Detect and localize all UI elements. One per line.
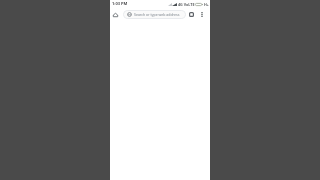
staticText: Search or type web address [134, 12, 180, 17]
button[interactable]: Tabs [187, 10, 196, 19]
button[interactable]: Home [111, 10, 120, 19]
button[interactable]: Search or type web address [123, 10, 186, 19]
staticText: 4G VoLTE [178, 2, 195, 7]
staticText: 1:03 PM [112, 1, 128, 6]
staticText: H+ [204, 2, 209, 7]
button[interactable]: More options [197, 10, 206, 19]
